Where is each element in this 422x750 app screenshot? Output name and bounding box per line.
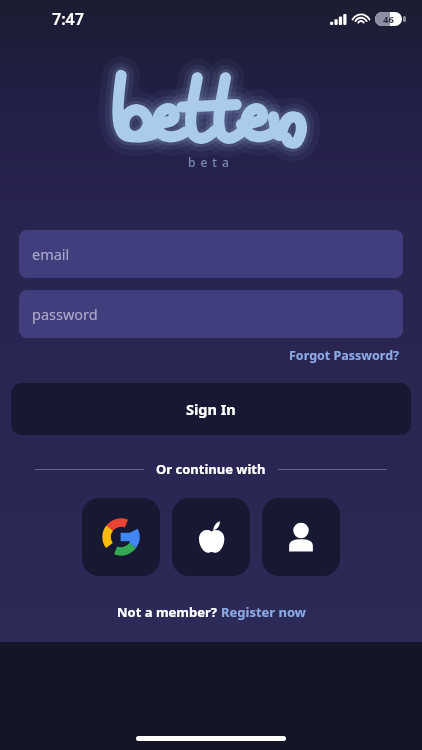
staticText: Not a member? [117, 603, 221, 621]
staticText: password [32, 304, 98, 324]
staticText: Sign In [186, 399, 236, 419]
button[interactable]: email [19, 230, 403, 278]
staticText: email [32, 244, 70, 264]
button[interactable]: Sign In [11, 383, 411, 435]
staticText: beta [188, 154, 234, 170]
button[interactable]: password [19, 290, 403, 338]
staticText: 7:47 [52, 8, 84, 30]
staticText: Or continue with [156, 460, 266, 478]
staticText: Register now [221, 603, 306, 621]
button[interactable]: Not a member? [0, 603, 422, 621]
button[interactable]: Sign in with Apple [172, 498, 250, 576]
button[interactable]: Forgot Password? [286, 344, 403, 367]
staticText: 46 [383, 13, 394, 26]
staticText: Forgot Password? [289, 347, 400, 364]
button[interactable]: Continue as guest [262, 498, 340, 576]
button[interactable]: Sign in with Google [82, 498, 160, 576]
